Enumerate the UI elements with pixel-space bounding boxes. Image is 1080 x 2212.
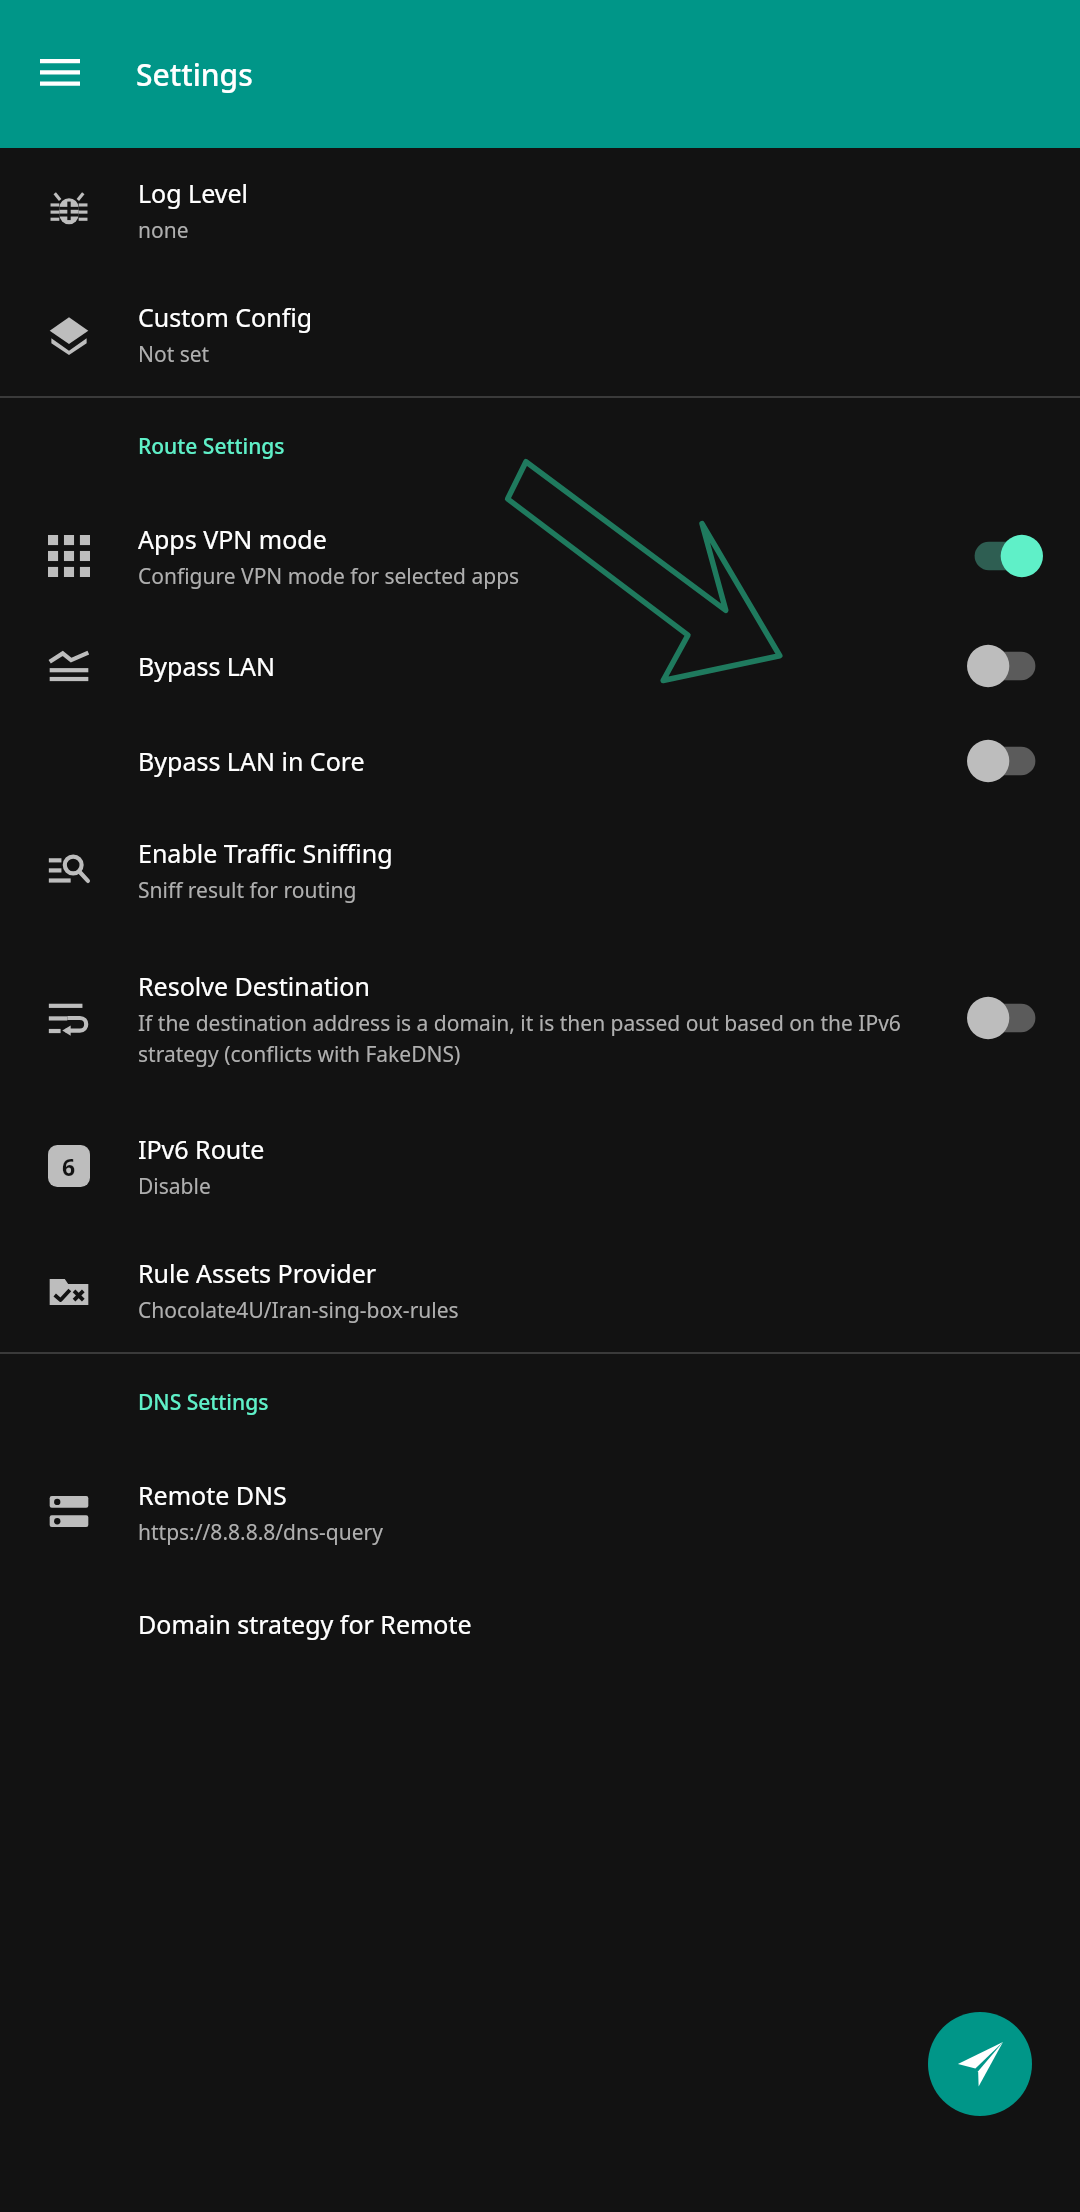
staticText: Custom Config [138, 300, 313, 334]
button[interactable]: Bypass LAN in Core [0, 713, 1080, 808]
staticText: Sniff result for routing [138, 876, 357, 905]
staticText: none [138, 216, 189, 245]
button[interactable]: Bypass LAN [0, 618, 1080, 713]
staticText: Settings [136, 54, 253, 95]
button[interactable]: Remote DNS [0, 1450, 1080, 1574]
staticText: DNS Settings [138, 1388, 269, 1417]
staticText: Chocolate4U/Iran-sing-box-rules [138, 1296, 459, 1325]
staticText: Not set [138, 340, 210, 369]
button[interactable] [930, 494, 1080, 618]
button[interactable] [930, 618, 1080, 713]
staticText: If the destination address is a domain, … [138, 1009, 918, 1068]
button[interactable]: Apps VPN mode [0, 494, 1080, 618]
button[interactable]: Rule Assets Provider [0, 1228, 1080, 1352]
staticText: Remote DNS [138, 1478, 287, 1512]
staticText: Bypass LAN in Core [138, 744, 365, 778]
button[interactable]: Log Level [0, 148, 1080, 272]
staticText: Route Settings [138, 432, 285, 461]
staticText: Bypass LAN [138, 649, 275, 683]
staticText: Enable Traffic Sniffing [138, 836, 393, 870]
staticText: Resolve Destination [138, 969, 370, 1003]
button[interactable]: Enable Traffic Sniffing [0, 808, 1080, 932]
staticText: Disable [138, 1172, 211, 1201]
staticText: Configure VPN mode for selected apps [138, 562, 520, 591]
button[interactable]: Connect [928, 2012, 1032, 2116]
button[interactable]: Custom Config [0, 272, 1080, 396]
staticText: Domain strategy for Remote [138, 1607, 472, 1641]
staticText: IPv6 Route [138, 1132, 265, 1166]
button[interactable] [930, 713, 1080, 808]
staticText: Rule Assets Provider [138, 1256, 377, 1290]
button[interactable]: Resolve Destination [0, 932, 1080, 1104]
staticText: https://8.8.8.8/dns-query [138, 1518, 383, 1547]
button[interactable]: 6 [0, 1104, 1080, 1228]
button[interactable] [930, 932, 1080, 1104]
staticText: Log Level [138, 176, 249, 210]
staticText: Apps VPN mode [138, 522, 327, 556]
staticText: 6 [62, 1151, 76, 1182]
button[interactable]: Open navigation drawer [24, 38, 96, 110]
button[interactable]: Domain strategy for Remote [0, 1574, 1080, 1674]
